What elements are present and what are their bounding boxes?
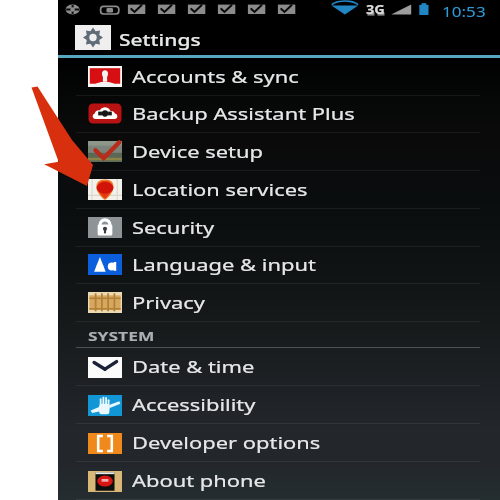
staticText: Security [132, 217, 215, 239]
staticText: Accounts & sync [132, 66, 299, 88]
staticText: Accessibility [132, 394, 256, 416]
button[interactable]: Accessibility [58, 386, 500, 424]
staticText: Date & time [132, 356, 255, 378]
button[interactable]: Date & time [58, 348, 500, 386]
button[interactable]: Language & input [58, 246, 500, 284]
staticText: Developer options [132, 432, 321, 454]
button[interactable]: Accounts & sync [58, 58, 500, 96]
staticText: Device setup [132, 141, 263, 163]
button[interactable]: About phone [58, 462, 500, 500]
button[interactable]: Device setup [58, 133, 500, 171]
staticText: Privacy [132, 292, 206, 314]
button[interactable]: Privacy [58, 284, 500, 322]
button[interactable]: Settings [58, 19, 500, 56]
staticText: About phone [132, 470, 266, 492]
staticText: Backup Assistant Plus [132, 103, 355, 125]
staticText: Settings [119, 29, 201, 51]
button[interactable]: Backup Assistant Plus [58, 95, 500, 133]
staticText: SYSTEM [88, 327, 155, 345]
staticText: 10:53 [442, 2, 486, 21]
staticText: 3G [366, 0, 385, 18]
staticText: Language & input [132, 254, 317, 276]
button[interactable]: Developer options [58, 424, 500, 462]
button[interactable]: Location services [58, 171, 500, 209]
button[interactable]: Security [58, 209, 500, 247]
staticText: Location services [132, 179, 308, 201]
